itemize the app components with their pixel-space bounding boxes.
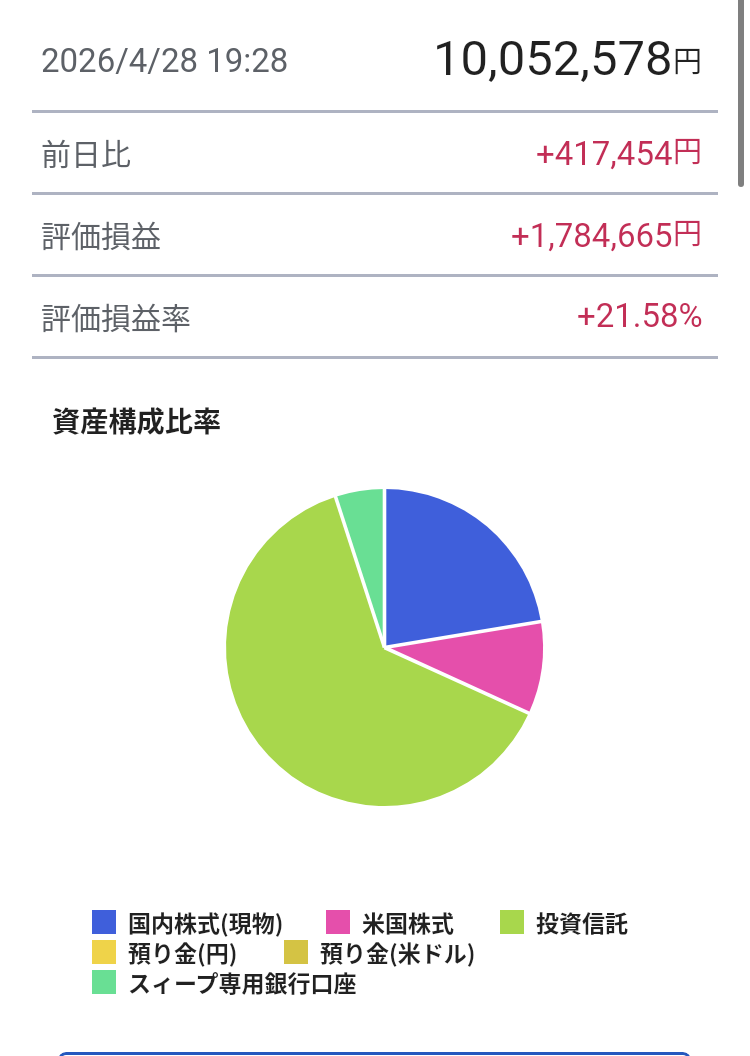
staticText: 円 xyxy=(673,128,703,170)
staticText: 国内株式(現物) xyxy=(128,905,284,938)
staticText: +1,784,665 xyxy=(511,216,673,255)
staticText: 10,052,578 xyxy=(433,30,673,87)
button[interactable]: 評価損益 xyxy=(0,193,750,274)
button[interactable]: スィープ専用銀行口座 xyxy=(92,964,357,1000)
staticText: 評価損益率 xyxy=(41,294,191,337)
button[interactable]: 次へ xyxy=(58,1052,691,1056)
button[interactable]: 投資信託 xyxy=(500,904,630,940)
staticText: 資産構成比率 xyxy=(52,399,222,440)
staticText: 米国株式 xyxy=(362,905,454,938)
button[interactable]: 評価損益率 xyxy=(0,275,750,356)
button[interactable]: 国内株式(現物) xyxy=(92,904,282,940)
button[interactable]: 前日比 xyxy=(0,111,750,192)
staticText: スィープ専用銀行口座 xyxy=(128,965,357,998)
staticText: 預り金(米ドル) xyxy=(320,935,476,968)
button[interactable]: 預り金(円) xyxy=(92,934,238,970)
button[interactable]: 預り金(米ドル) xyxy=(284,934,474,970)
button[interactable]: 米国株式 xyxy=(326,904,456,940)
staticText: 評価損益 xyxy=(41,212,161,255)
staticText: 円 xyxy=(673,38,703,80)
staticText: 前日比 xyxy=(41,130,131,173)
staticText: 投資信託 xyxy=(536,905,628,938)
staticText: 預り金(円) xyxy=(128,935,238,968)
staticText: 2026/4/28 19:28 xyxy=(41,41,289,80)
other: 資産構成比率 円グラフ xyxy=(226,489,543,806)
staticText: 円 xyxy=(673,210,703,252)
staticText: +417,454 xyxy=(536,134,673,173)
staticText: +21.58% xyxy=(577,296,703,335)
